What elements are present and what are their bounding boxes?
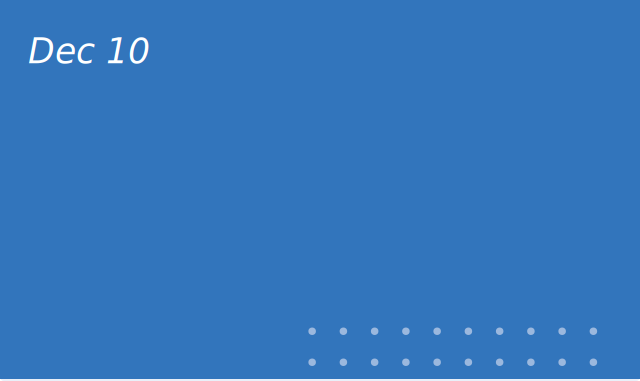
staticText: Dec 10 [28, 31, 150, 71]
